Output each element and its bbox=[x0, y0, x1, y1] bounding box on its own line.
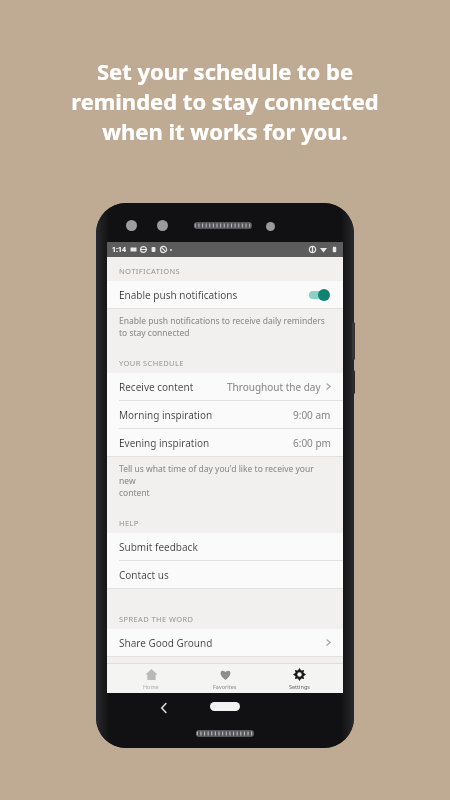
staticText: 1:14 bbox=[112, 245, 126, 255]
button[interactable]: Morning inspiration bbox=[107, 401, 343, 429]
staticText: Tell us what time of day you'd like to r… bbox=[119, 463, 327, 499]
staticText: Favorites bbox=[213, 683, 237, 690]
staticText: HELP bbox=[119, 518, 139, 528]
staticText: Set your schedule to be reminded to stay… bbox=[71, 56, 379, 146]
button[interactable]: Share Good Ground bbox=[107, 629, 343, 656]
staticText: SPREAD THE WORD bbox=[119, 614, 194, 624]
staticText: Contact us bbox=[119, 568, 169, 582]
staticText: 6:00 pm bbox=[293, 436, 331, 450]
button[interactable]: Favorites bbox=[195, 664, 255, 693]
button[interactable]: Submit feedback bbox=[107, 533, 343, 561]
staticText: YOUR SCHEDULE bbox=[119, 358, 184, 368]
staticText: Enable push notifications to receive dai… bbox=[119, 315, 325, 339]
button[interactable]: Evening inspiration bbox=[107, 429, 343, 456]
staticText: Morning inspiration bbox=[119, 408, 213, 422]
staticText: Home bbox=[143, 683, 159, 690]
button[interactable]: Home bbox=[210, 702, 240, 711]
staticText: NOTIFICATIONS bbox=[119, 266, 181, 276]
staticText: Share Good Ground bbox=[119, 636, 213, 650]
staticText: Enable push notifications bbox=[119, 288, 238, 302]
button[interactable]: Contact us bbox=[107, 561, 343, 588]
staticText: Submit feedback bbox=[119, 540, 198, 554]
staticText: Throughout the day bbox=[227, 380, 321, 394]
staticText: 9:00 am bbox=[293, 408, 331, 422]
staticText: Settings bbox=[289, 683, 310, 690]
button[interactable]: Home bbox=[121, 664, 181, 693]
staticText: Receive content bbox=[119, 380, 194, 394]
button[interactable]: Enable push notifications bbox=[107, 281, 343, 308]
button[interactable]: Settings bbox=[269, 664, 329, 693]
button[interactable]: Back bbox=[156, 700, 172, 716]
staticText: Evening inspiration bbox=[119, 436, 210, 450]
button[interactable]: Receive content bbox=[107, 373, 343, 401]
